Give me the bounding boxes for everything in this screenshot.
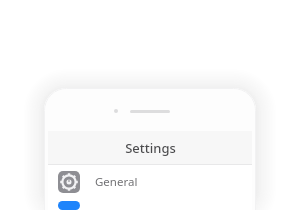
staticText: General: [95, 174, 138, 190]
staticText: Settings: [125, 139, 176, 157]
button[interactable]: [48, 198, 252, 210]
button[interactable]: General settings: [48, 165, 252, 198]
other: General settings: [58, 171, 80, 193]
